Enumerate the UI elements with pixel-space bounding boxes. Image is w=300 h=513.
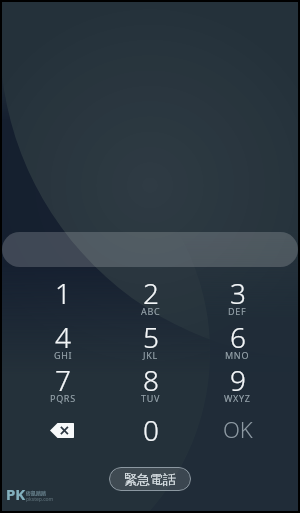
staticText: 2 [143,274,159,312]
staticText: 6 [230,318,246,356]
button[interactable]: 1 [19,274,107,318]
staticText: MNO [225,349,250,361]
button[interactable] [2,232,298,267]
staticText: JKL [143,349,158,361]
staticText: 5 [143,318,159,356]
button[interactable]: 7 [19,361,107,405]
staticText: 8 [143,361,159,399]
staticText: 0 [143,411,159,449]
staticText: pkstep.com [26,496,54,503]
staticText: 3 [230,274,246,312]
button[interactable]: Delete [19,411,107,451]
button[interactable]: 6 [194,318,281,362]
staticText: OK [223,414,253,444]
button[interactable]: OK [194,411,281,451]
button[interactable]: 9 [194,361,281,405]
staticText: 9 [230,361,246,399]
button[interactable]: 4 [19,318,107,362]
button[interactable]: 5 [107,318,194,362]
staticText: 7 [55,361,71,399]
button[interactable]: 緊急電話 [109,467,191,491]
staticText: GHI [54,349,73,361]
staticText: TUV [141,392,161,404]
staticText: 痞凱踏踏 [26,490,46,496]
button[interactable]: 0 [107,411,194,451]
staticText: 緊急電話 [124,471,176,487]
staticText: ABC [141,305,161,317]
staticText: DEF [228,305,247,317]
staticText: PQRS [50,392,76,404]
staticText: PK [6,484,26,504]
staticText: 4 [55,318,71,356]
button[interactable]: 2 [107,274,194,318]
button[interactable]: 3 [194,274,281,318]
button[interactable]: 8 [107,361,194,405]
staticText: 1 [55,274,71,312]
staticText: WXYZ [224,392,251,404]
